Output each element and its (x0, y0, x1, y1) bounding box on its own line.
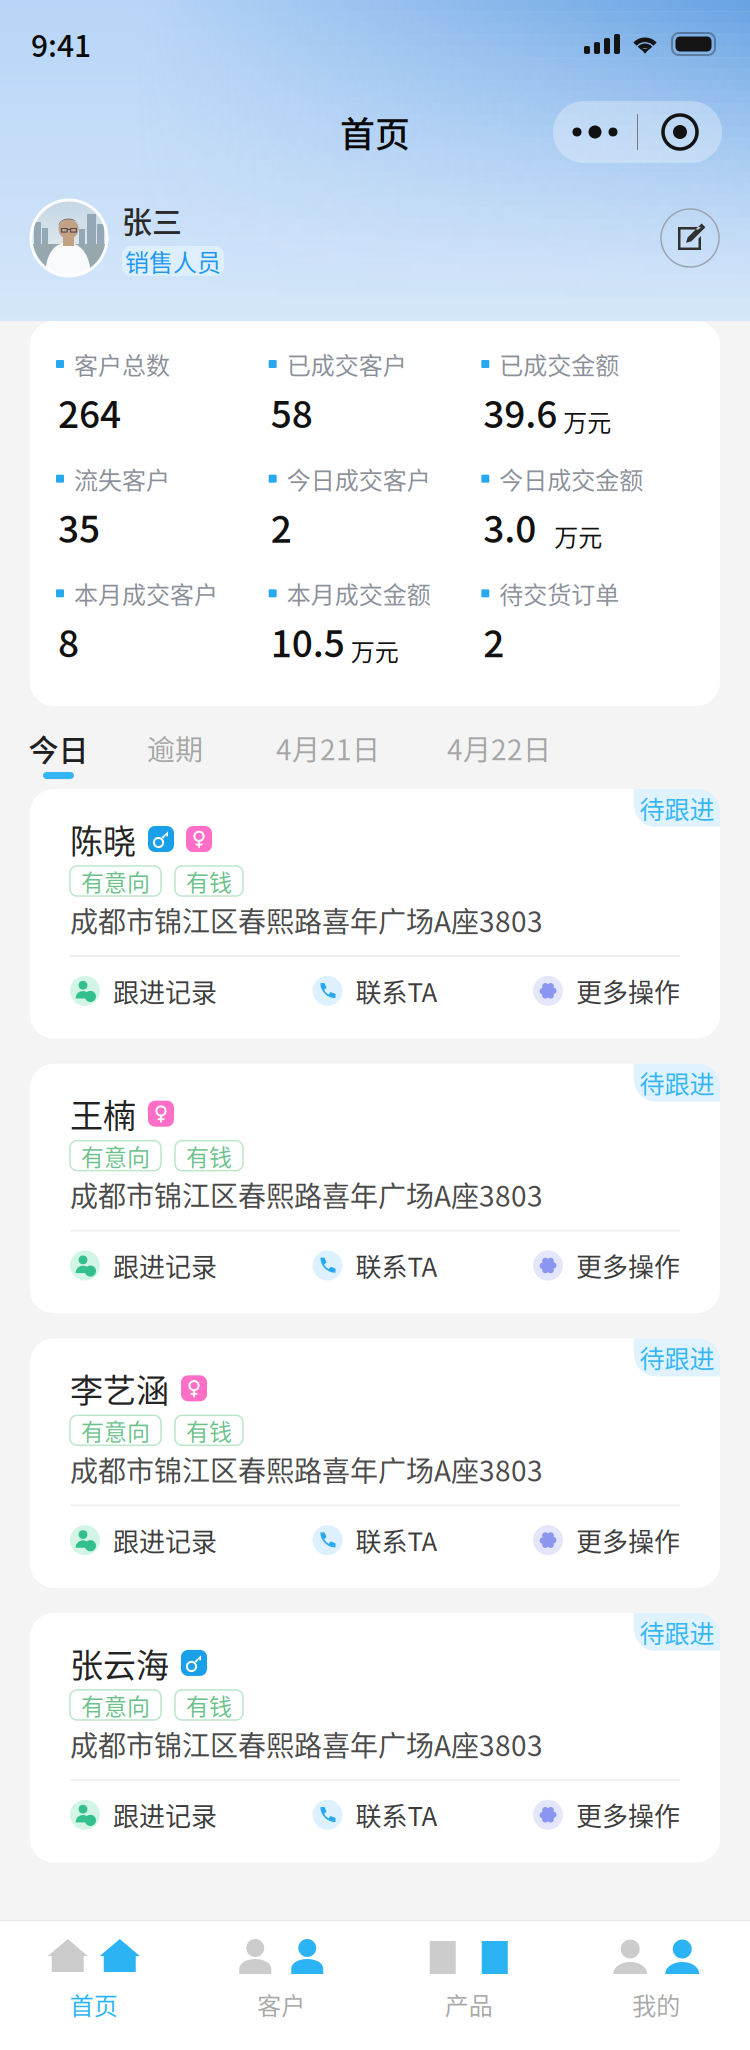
button[interactable]: 更多操作 (533, 972, 680, 1010)
staticText: 更多操作 (576, 972, 680, 1010)
staticText: 万元 (563, 404, 611, 439)
staticText: 王楠 (70, 1090, 136, 1138)
staticText: 客户 (257, 1987, 305, 2022)
staticText: 更多操作 (576, 1796, 680, 1834)
staticText: 已成交金额 (499, 347, 619, 381)
staticText: 客户总数 (74, 347, 170, 381)
staticText: 9:41 (31, 22, 91, 66)
button[interactable]: 跟进记录 (70, 1247, 217, 1284)
staticText: 跟进记录 (113, 1521, 217, 1559)
staticText: 今日成交客户 (287, 461, 431, 496)
staticText: 2 (271, 500, 292, 553)
staticText: 我的 (632, 1987, 680, 2022)
staticText: 本月成交客户 (74, 576, 218, 611)
button[interactable]: 逾期 (107, 729, 243, 767)
staticText: 有钱 (186, 1139, 232, 1172)
staticText: 销售人员 (125, 244, 221, 278)
staticText: 联系TA (355, 1796, 437, 1834)
staticText: 待跟进 (639, 1064, 714, 1101)
button[interactable]: 4月22日 (413, 729, 585, 767)
staticText: 58 (271, 385, 313, 439)
button[interactable]: 跟进记录 (70, 1796, 217, 1834)
staticText: 39.6 (483, 385, 557, 439)
staticText: 成都市锦江区春熙路喜年广场A座3803 (70, 900, 543, 940)
staticText: 35 (58, 500, 100, 553)
staticText: 跟进记录 (113, 972, 217, 1010)
staticText: 有钱 (186, 1414, 232, 1447)
button[interactable]: 我的 (562, 1935, 750, 2022)
button[interactable]: 跟进记录 (70, 972, 217, 1010)
button[interactable]: 更多操作 (533, 1521, 680, 1559)
staticText: 跟进记录 (113, 1247, 217, 1284)
staticText: 成都市锦江区春熙路喜年广场A座3803 (70, 1724, 543, 1764)
button[interactable]: 更多操作 (533, 1247, 680, 1284)
button[interactable]: Edit profile (661, 209, 719, 267)
staticText: 264 (58, 385, 121, 439)
staticText: 2 (483, 614, 504, 668)
staticText: 待交货订单 (499, 576, 619, 611)
button[interactable]: 跟进记录 (70, 1521, 217, 1559)
button[interactable]: 更多操作 (533, 1796, 680, 1834)
staticText: 首页 (70, 1987, 118, 2022)
staticText: 今日 (28, 726, 88, 770)
staticText: 逾期 (147, 728, 203, 768)
staticText: 张云海 (70, 1639, 169, 1687)
staticText: 8 (58, 614, 79, 668)
staticText: 待跟进 (639, 790, 714, 826)
button[interactable]: 联系TA (312, 972, 437, 1010)
staticText: 成都市锦江区春熙路喜年广场A座3803 (70, 1449, 543, 1489)
button[interactable]: More (553, 101, 637, 163)
staticText: 成都市锦江区春熙路喜年广场A座3803 (70, 1174, 543, 1215)
staticText: 有钱 (186, 864, 232, 898)
staticText: 有意向 (81, 1414, 150, 1447)
staticText: 万元 (351, 633, 399, 668)
staticText: 已成交客户 (287, 347, 407, 381)
staticText: 更多操作 (576, 1521, 680, 1559)
staticText: 有意向 (81, 1139, 150, 1172)
staticText: 联系TA (355, 1521, 437, 1559)
staticText: 本月成交金额 (287, 576, 431, 611)
staticText: 产品 (445, 1987, 493, 2022)
button[interactable]: Close (638, 101, 722, 163)
staticText: 有钱 (186, 1688, 232, 1722)
staticText: 有意向 (81, 1688, 150, 1722)
staticText: 10.5 (271, 614, 345, 668)
staticText: 今日成交金额 (499, 461, 643, 496)
staticText: 联系TA (355, 1247, 437, 1284)
button[interactable]: 联系TA (312, 1521, 437, 1559)
staticText: 李艺涵 (70, 1364, 169, 1412)
staticText: 流失客户 (74, 461, 170, 496)
staticText: 更多操作 (576, 1247, 680, 1284)
button[interactable]: 联系TA (312, 1796, 437, 1834)
button[interactable]: 产品 (375, 1935, 562, 2022)
button[interactable]: 首页 (0, 1935, 187, 2022)
staticText: 万元 (554, 519, 602, 553)
button[interactable]: 今日 (10, 729, 107, 779)
staticText: 首页 (340, 107, 410, 157)
staticText: 联系TA (355, 972, 437, 1010)
staticText: 待跟进 (639, 1614, 714, 1650)
staticText: 4月22日 (447, 728, 551, 768)
button[interactable]: 客户 (187, 1935, 375, 2022)
staticText: 待跟进 (639, 1339, 714, 1375)
button[interactable]: 4月21日 (243, 729, 413, 767)
staticText: 有意向 (81, 864, 150, 898)
staticText: 3.0 (483, 500, 536, 553)
button[interactable]: 联系TA (312, 1247, 437, 1284)
staticText: 4月21日 (276, 728, 380, 768)
staticText: 跟进记录 (113, 1796, 217, 1834)
staticText: 陈晓 (70, 815, 136, 863)
staticText: 张三 (122, 198, 182, 242)
